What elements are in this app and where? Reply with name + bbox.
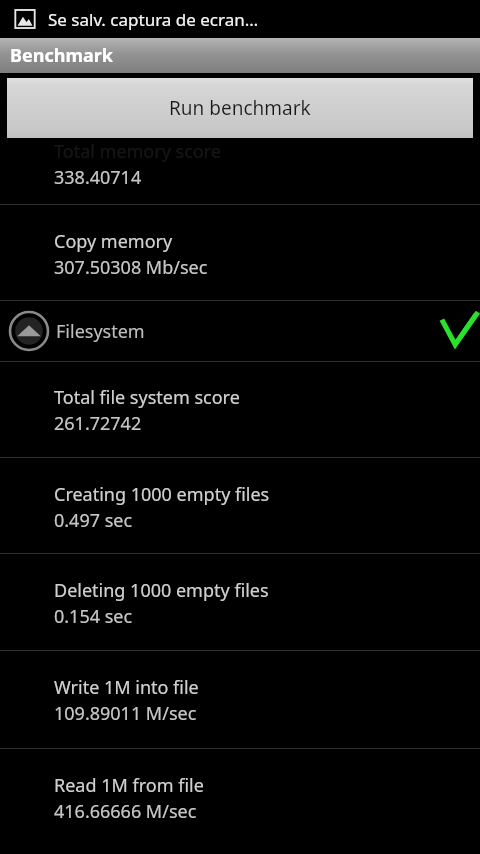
staticText: Se salv. captura de ecran… <box>48 8 259 31</box>
staticText: 307.50308 Mb/sec <box>54 255 208 280</box>
staticText: Creating 1000 empty files <box>54 482 270 507</box>
staticText: Run benchmark <box>169 95 311 121</box>
staticText: Filesystem <box>56 319 145 344</box>
button[interactable]: Read 1M from file <box>0 749 480 846</box>
staticText: Total memory score <box>54 139 221 164</box>
staticText: Copy memory <box>54 229 173 254</box>
staticText: Read 1M from file <box>54 773 204 798</box>
staticText: Write 1M into file <box>54 675 199 700</box>
staticText: 261.72742 <box>54 411 142 436</box>
button[interactable]: Collapse Filesystem section <box>9 311 49 351</box>
staticText: 109.89011 M/sec <box>54 701 197 726</box>
staticText: 0.497 sec <box>54 508 133 533</box>
staticText: 338.40714 <box>54 165 142 190</box>
staticText: 0.154 sec <box>54 604 133 629</box>
button[interactable]: Copy memory <box>0 205 480 300</box>
button[interactable]: Total file system score <box>0 362 480 457</box>
staticText: Total file system score <box>54 385 240 410</box>
button[interactable]: Write 1M into file <box>0 651 480 748</box>
other: Completed <box>440 312 478 350</box>
button[interactable]: Collapse Filesystem section <box>0 301 480 361</box>
button[interactable]: Deleting 1000 empty files <box>0 554 480 650</box>
button[interactable]: Creating 1000 empty files <box>0 458 480 553</box>
staticText: Deleting 1000 empty files <box>54 578 269 603</box>
staticText: Benchmark <box>10 43 113 68</box>
button[interactable]: Total memory score <box>0 139 480 204</box>
staticText: 416.66666 M/sec <box>54 799 197 824</box>
button[interactable]: Run benchmark <box>7 78 473 138</box>
